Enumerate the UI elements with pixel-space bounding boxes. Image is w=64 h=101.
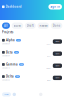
staticText: Sign in (50, 5, 60, 8)
staticText: Updated 1d (2, 67, 10, 69)
staticText: Open (55, 65, 59, 67)
staticText: Done (53, 24, 60, 27)
button[interactable]: Gamma (0, 60, 64, 72)
staticText: Open (55, 53, 59, 55)
staticText: Draft (27, 24, 34, 27)
staticText: Projects (2, 30, 13, 34)
staticText: 12 items (46, 43, 51, 45)
button[interactable]: Done (51, 22, 62, 29)
button[interactable]: Review (37, 22, 49, 29)
staticText: Open (55, 77, 59, 79)
button[interactable]: Alpha (0, 35, 64, 48)
staticText: New (20, 64, 23, 65)
staticText: New (17, 39, 20, 41)
button[interactable]: Delta (0, 72, 64, 84)
staticText: Open (55, 41, 59, 42)
staticText: All (4, 24, 8, 27)
button[interactable]: Active (12, 22, 23, 29)
staticText: 24 items (46, 67, 51, 69)
button[interactable]: Beta (0, 48, 64, 60)
button[interactable]: Previous page (13, 93, 16, 96)
staticText: Live (15, 51, 18, 53)
staticText: Updated 3d (2, 79, 10, 81)
button[interactable]: Draft (25, 22, 36, 29)
staticText: Live (16, 76, 19, 77)
staticText: Gamma (6, 63, 18, 66)
staticText: Alpha (6, 38, 15, 42)
staticText: 8 items (47, 55, 51, 57)
staticText: Dashboard (6, 5, 22, 8)
staticText: Review (39, 24, 47, 27)
staticText: Delta (6, 75, 14, 78)
staticText: 5 items (47, 80, 51, 81)
staticText: 1-4 of 24 (4, 93, 9, 95)
button[interactable]: Next page (39, 93, 42, 96)
button[interactable]: Sign in (48, 4, 62, 9)
staticText: Beta (6, 51, 13, 54)
staticText: Updated 5h (2, 55, 10, 57)
staticText: Active (14, 24, 21, 27)
staticText: Updated 2h (2, 43, 10, 45)
button[interactable]: All (2, 22, 10, 29)
